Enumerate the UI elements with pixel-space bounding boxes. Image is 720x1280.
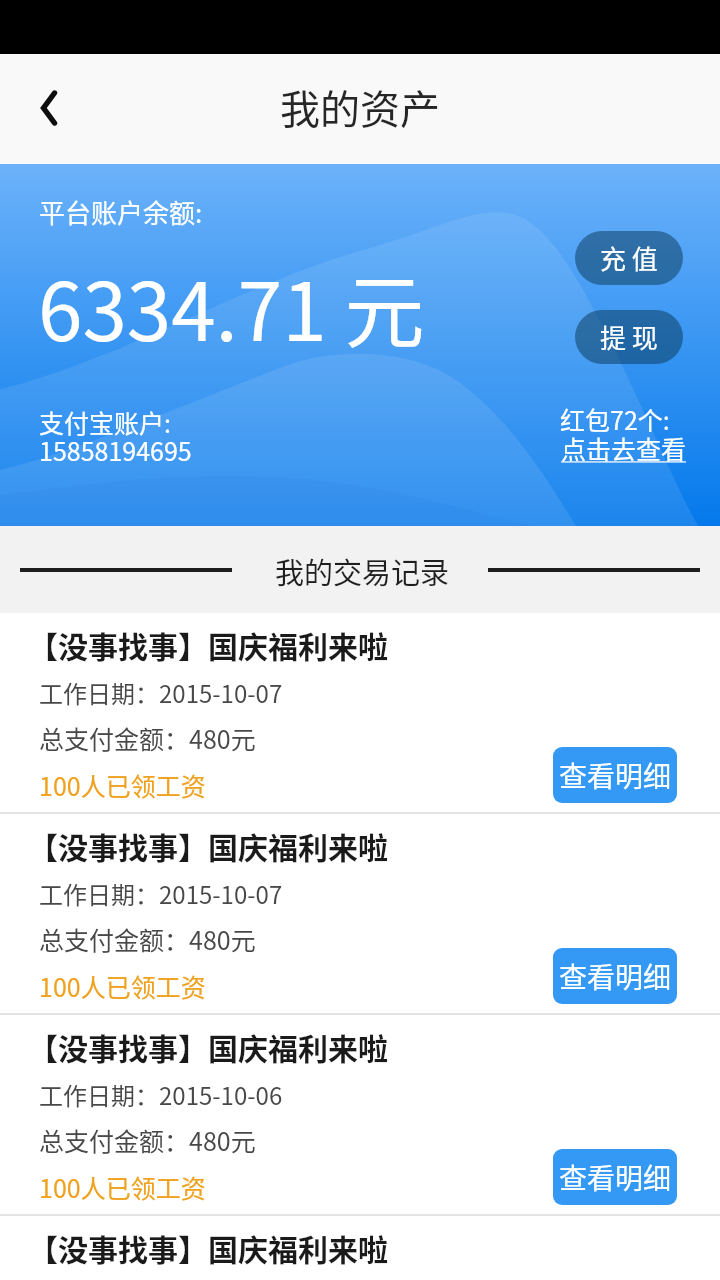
button[interactable]: 【没事找事】国庆福利来啦 xyxy=(0,814,720,1013)
staticText: 【没事找事】国庆福利来啦 xyxy=(28,1025,388,1068)
staticText: 15858194695 xyxy=(39,432,192,468)
button[interactable]: 红包72个: xyxy=(555,401,687,463)
staticText: 总支付金额：480元 xyxy=(39,921,256,957)
staticText: 100人已领工资 xyxy=(39,767,206,803)
staticText: 6334.71 元 xyxy=(38,248,425,364)
staticText: 100人已领工资 xyxy=(39,968,206,1004)
staticText: 【没事找事】国庆福利来啦 xyxy=(28,824,388,867)
button[interactable]: Back xyxy=(14,73,84,143)
staticText: 工作日期：2015-10-06 xyxy=(39,1077,283,1112)
staticText: 平台账户余额: xyxy=(39,193,203,231)
button[interactable]: 查看明细 xyxy=(553,747,677,803)
staticText: 查看明细 xyxy=(559,755,672,796)
staticText: 充 值 xyxy=(600,239,658,277)
button[interactable]: 充 值 xyxy=(575,231,683,285)
staticText: 查看明细 xyxy=(559,956,672,997)
staticText: 我的资产 xyxy=(280,78,440,136)
staticText: 总支付金额：480元 xyxy=(39,1122,256,1158)
staticText: 我的交易记录 xyxy=(275,550,450,592)
button[interactable]: 【没事找事】国庆福利来啦 xyxy=(0,613,720,812)
button[interactable]: 【没事找事】国庆福利来啦 xyxy=(0,1216,720,1280)
staticText: 100人已领工资 xyxy=(39,1169,206,1205)
button[interactable]: 查看明细 xyxy=(553,948,677,1004)
staticText: 红包72个: xyxy=(560,401,670,437)
staticText: 工作日期：2015-10-07 xyxy=(39,675,283,710)
staticText: 工作日期：2015-10-07 xyxy=(39,876,283,911)
button[interactable]: 提 现 xyxy=(575,310,683,364)
staticText: 【没事找事】国庆福利来啦 xyxy=(28,623,388,666)
staticText: 点击去查看 xyxy=(561,430,687,466)
staticText: 总支付金额：480元 xyxy=(39,720,256,756)
button[interactable]: 【没事找事】国庆福利来啦 xyxy=(0,1015,720,1214)
button[interactable]: 查看明细 xyxy=(553,1149,677,1205)
staticText: 查看明细 xyxy=(559,1157,672,1198)
staticText: 【没事找事】国庆福利来啦 xyxy=(28,1226,388,1269)
staticText: 提 现 xyxy=(600,318,658,356)
staticText: 支付宝账户: xyxy=(39,404,171,440)
